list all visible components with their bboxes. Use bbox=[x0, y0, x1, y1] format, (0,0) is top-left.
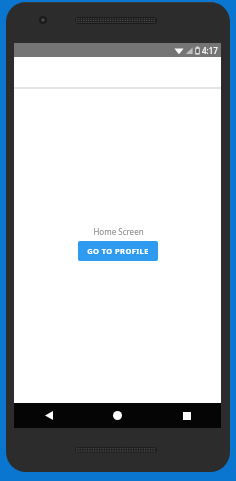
staticText: GO TO PROFILE bbox=[87, 246, 149, 256]
button[interactable]: Back bbox=[14, 403, 83, 428]
staticText: 4:17 bbox=[202, 45, 218, 56]
button[interactable]: Recent apps bbox=[152, 403, 221, 428]
staticText: Home Screen bbox=[93, 226, 144, 237]
button[interactable]: Home bbox=[83, 403, 152, 428]
button[interactable]: GO TO PROFILE bbox=[78, 241, 158, 261]
